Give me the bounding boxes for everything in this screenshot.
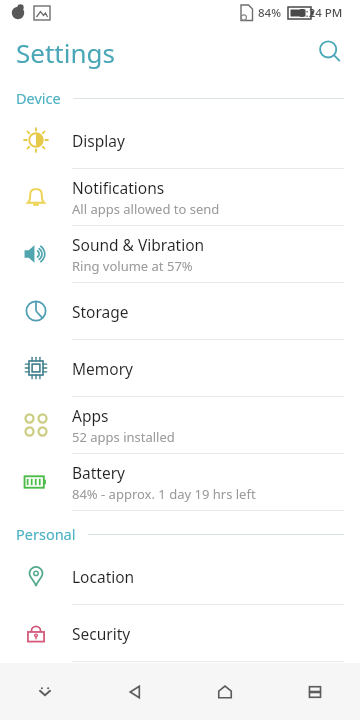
staticText: Display [72,130,125,151]
staticText: Storage [72,301,129,322]
button[interactable]: Apps [0,397,360,453]
button[interactable]: Recent apps [270,663,360,720]
staticText: Memory [72,358,133,379]
button[interactable]: Memory [0,340,360,396]
staticText: All apps allowed to send [72,200,220,218]
button[interactable]: Search [308,30,352,74]
button[interactable]: Sound & Vibration [0,226,360,282]
staticText: Device [16,88,61,108]
staticText: Settings [16,35,115,70]
staticText: 84% [258,5,281,21]
button[interactable]: Storage [0,283,360,339]
staticText: Sound & Vibration [72,234,205,255]
staticText: 84% - approx. 1 day 19 hrs left [72,485,256,503]
staticText: 5:24 PM [299,5,343,21]
staticText: Location [72,566,135,587]
button[interactable]: Battery [0,454,360,510]
button[interactable]: Home [180,663,270,720]
button[interactable]: Security [0,605,360,661]
button[interactable]: Notifications [0,169,360,225]
staticText: Security [72,623,131,644]
button[interactable]: Back [90,663,180,720]
staticText: Notifications [72,177,165,198]
button[interactable]: Hide navigation bar [0,663,90,720]
button[interactable]: Location [0,548,360,604]
staticText: 52 apps installed [72,428,175,446]
staticText: Battery [72,462,126,483]
staticText: Ring volume at 57% [72,257,193,275]
staticText: Apps [72,405,109,426]
button[interactable]: Display [0,112,360,168]
staticText: Personal [16,524,76,544]
